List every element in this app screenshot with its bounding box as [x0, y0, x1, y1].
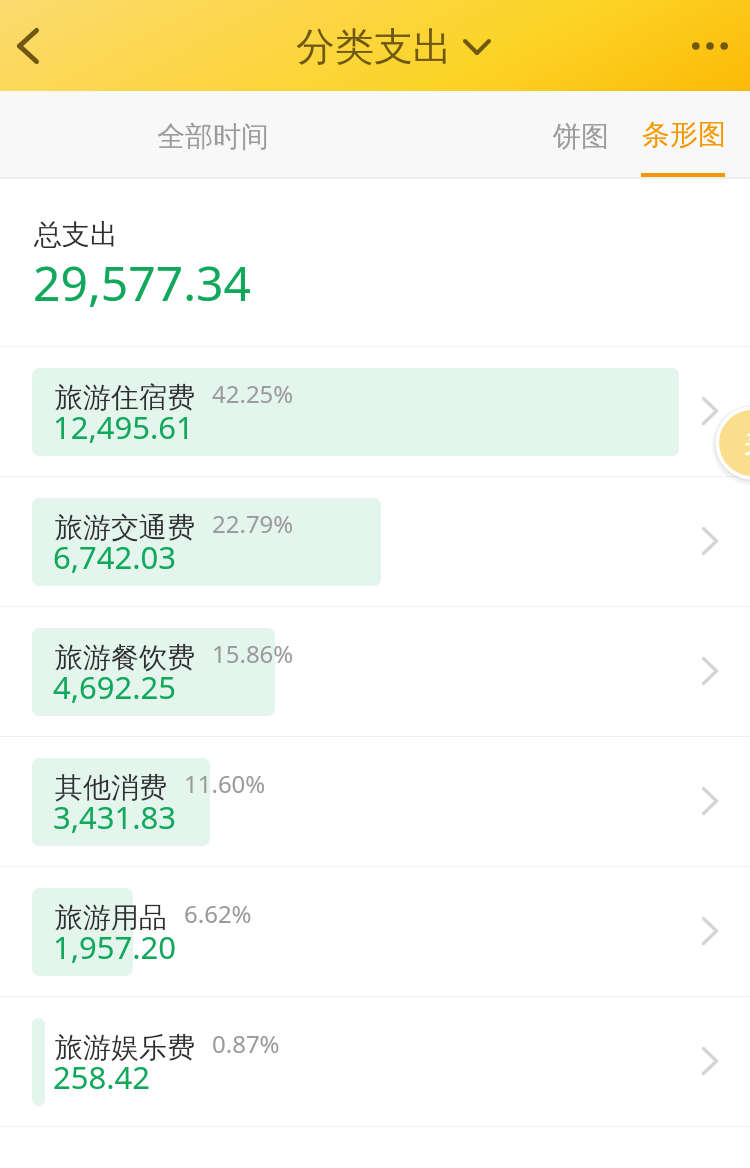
- button[interactable]: 旅游娱乐费: [0, 996, 750, 1126]
- button[interactable]: More options: [678, 10, 750, 82]
- staticText: 分类支出: [296, 22, 452, 71]
- staticText: 0.87%: [212, 1027, 280, 1060]
- button[interactable]: 条形图: [631, 91, 715, 179]
- staticText: 258.42: [53, 1056, 150, 1098]
- staticText: 旅游用品: [55, 900, 167, 935]
- button[interactable]: 养成计划: [719, 410, 750, 476]
- staticText: 旅游住宿费: [55, 380, 195, 415]
- staticText: 22.79%: [212, 507, 294, 540]
- staticText: 旅游娱乐费: [55, 1030, 195, 1065]
- button[interactable]: Back: [0, 10, 72, 82]
- button[interactable]: 旅游交通费: [0, 476, 750, 606]
- staticText: 总支出: [34, 217, 118, 252]
- button[interactable]: 饼图: [543, 111, 619, 162]
- button[interactable]: 旅游餐饮费: [0, 606, 750, 736]
- staticText: 6,742.03: [53, 536, 177, 578]
- staticText: 42.25%: [212, 377, 294, 410]
- button[interactable]: 旅游用品: [0, 866, 750, 996]
- staticText: 4,692.25: [53, 666, 177, 708]
- staticText: 养: [743, 424, 750, 469]
- button[interactable]: 其他消费: [0, 736, 750, 866]
- button[interactable]: 分类支出: [296, 22, 491, 71]
- staticText: 条形图: [642, 117, 726, 152]
- staticText: 其他消费: [55, 770, 167, 805]
- staticText: 29,577.34: [33, 250, 251, 315]
- staticText: 12,495.61: [53, 406, 194, 448]
- button[interactable]: 全部时间: [147, 111, 279, 162]
- staticText: 旅游餐饮费: [55, 640, 195, 675]
- staticText: 11.60%: [184, 767, 266, 800]
- staticText: 3,431.83: [53, 796, 177, 838]
- button[interactable]: 旅游住宿费: [0, 346, 750, 476]
- staticText: 1,957.20: [53, 926, 177, 968]
- staticText: 全部时间: [157, 119, 269, 154]
- staticText: 6.62%: [184, 897, 252, 930]
- staticText: 饼图: [553, 119, 609, 154]
- staticText: 旅游交通费: [55, 510, 195, 545]
- staticText: 15.86%: [212, 637, 294, 670]
